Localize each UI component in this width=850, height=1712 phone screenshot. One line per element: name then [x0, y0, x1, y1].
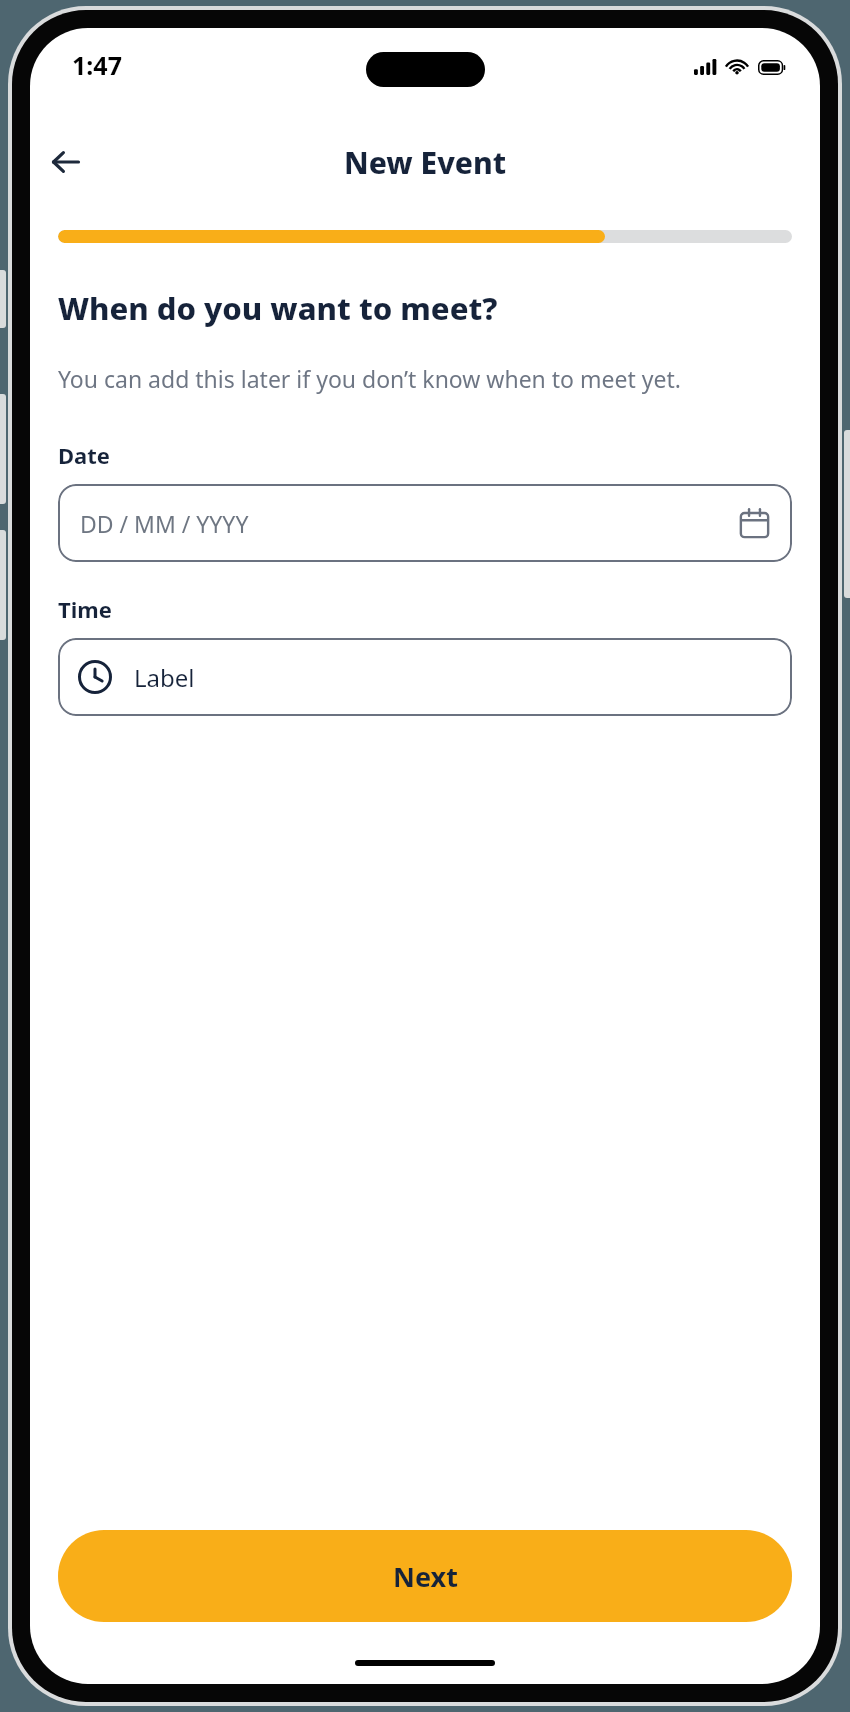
staticText: Next	[393, 1558, 458, 1595]
staticText: Label	[134, 661, 195, 694]
staticText: DD / MM / YYYY	[80, 508, 739, 539]
staticText: When do you want to meet?	[58, 287, 792, 329]
staticText: Date	[58, 440, 792, 470]
staticText: You can add this later if you don’t know…	[58, 363, 792, 394]
staticText: New Event	[344, 142, 507, 183]
button[interactable]: DD / MM / YYYY	[58, 484, 792, 562]
staticText: 1:47	[72, 48, 122, 82]
button[interactable]: Back	[38, 134, 94, 190]
staticText: Time	[58, 594, 792, 624]
button[interactable]: Next	[58, 1530, 792, 1622]
button[interactable]: Label	[58, 638, 792, 716]
